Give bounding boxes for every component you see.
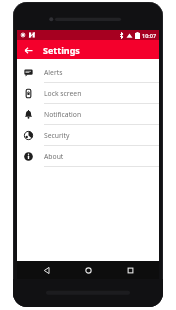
button[interactable]: Lock screen xyxy=(17,83,159,104)
staticText: Lock screen xyxy=(44,89,82,98)
button[interactable]: Back xyxy=(33,261,59,279)
staticText: Notification xyxy=(44,110,82,119)
staticText: Security xyxy=(44,131,70,140)
staticText: Alerts xyxy=(44,68,63,77)
staticText: About xyxy=(44,152,64,161)
button[interactable]: Recent apps xyxy=(117,261,143,279)
staticText: 10:07 xyxy=(142,32,157,39)
button[interactable]: Back xyxy=(21,43,35,57)
button[interactable]: Home xyxy=(75,261,101,279)
staticText: Settings xyxy=(43,44,80,56)
button[interactable]: Security xyxy=(17,125,159,146)
button[interactable]: Notification xyxy=(17,104,159,125)
button[interactable]: About xyxy=(17,146,159,167)
button[interactable]: Alerts xyxy=(17,62,159,83)
